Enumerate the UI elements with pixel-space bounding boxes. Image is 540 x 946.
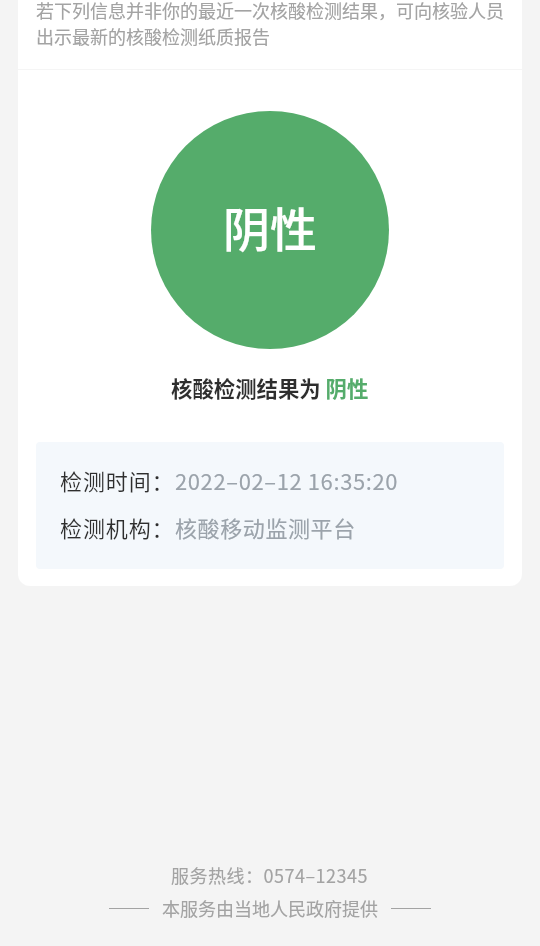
staticText: 检测机构： [60, 511, 175, 543]
staticText: 服务热线：0574–12345 [171, 862, 369, 888]
button[interactable]: 服务热线：0574–12345 [171, 862, 369, 888]
staticText: 本服务由当地人民政府提供 [162, 895, 378, 921]
staticText: 阴性 [223, 192, 317, 260]
staticText: 核酸检测结果为 阴性 [171, 372, 369, 403]
staticText: 核酸移动监测平台 [175, 511, 356, 543]
staticText: 2022–02–12 16:35:20 [175, 464, 399, 496]
staticText: 检测时间： [60, 464, 175, 496]
staticText: 若下列信息并非你的最近一次核酸检测结果，可向核验人员出示最新的核酸检测纸质报告 [36, 0, 504, 49]
